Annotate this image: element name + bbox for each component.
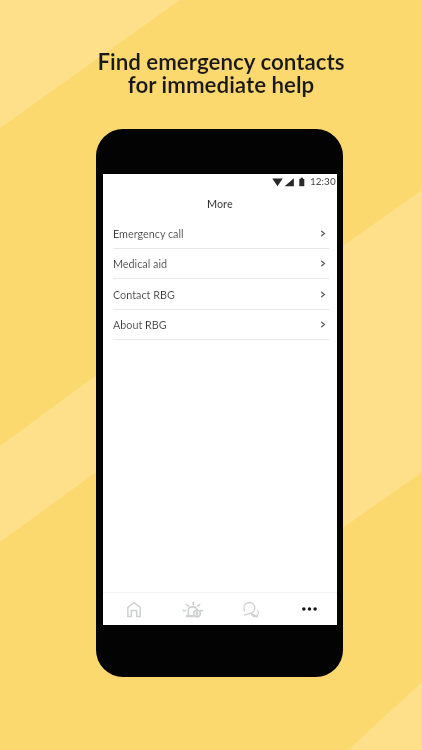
staticText: About RBG	[113, 318, 167, 331]
button[interactable]: About RBG	[103, 310, 337, 340]
button[interactable]: Medical aid	[103, 249, 337, 279]
staticText: 12:30	[310, 175, 336, 187]
staticText: Contact RBG	[113, 288, 175, 301]
staticText: Find emergency contacts for immediate he…	[97, 48, 345, 98]
button[interactable]: Messages	[221, 593, 280, 625]
staticText: Medical aid	[113, 257, 168, 270]
button[interactable]: Home	[104, 593, 163, 625]
button[interactable]: More	[280, 593, 339, 625]
button[interactable]: Contact RBG	[103, 280, 337, 310]
staticText: Emergency call	[113, 227, 184, 240]
staticText: More	[207, 197, 233, 210]
button[interactable]: Emergency alerts	[163, 593, 222, 625]
button[interactable]: Emergency call	[103, 219, 337, 249]
